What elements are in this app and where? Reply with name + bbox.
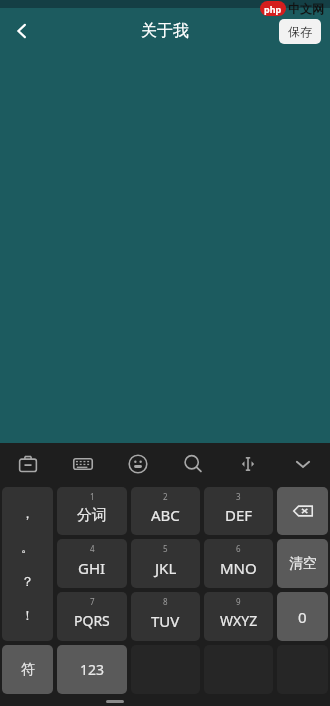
button[interactable]: 123 [57, 645, 127, 694]
staticText: 123 [80, 660, 105, 679]
button[interactable]: 3 [204, 487, 273, 535]
staticText: php [264, 3, 282, 15]
button[interactable]: 7 [57, 592, 127, 641]
staticText: 4 [90, 543, 95, 554]
staticText: ， [21, 505, 34, 521]
button[interactable]: 0 [277, 592, 328, 641]
staticText: JKL [155, 558, 177, 578]
staticText: 9 [236, 596, 241, 607]
button[interactable]: Hide keyboard [275, 443, 330, 485]
button[interactable]: 2 [131, 487, 200, 535]
staticText: 符 [21, 661, 35, 679]
button[interactable]: 9 [204, 592, 273, 641]
staticText: 7 [90, 596, 95, 607]
staticText: TUV [151, 611, 180, 631]
button[interactable]: 8 [131, 592, 200, 641]
button[interactable]: 6 [204, 539, 273, 588]
staticText: 1 [90, 491, 95, 502]
staticText: 清空 [289, 555, 317, 573]
staticText: 6 [236, 543, 241, 554]
button[interactable]: Emoji [110, 443, 165, 485]
staticText: 0 [298, 607, 307, 627]
staticText: 关于我 [141, 21, 189, 41]
button[interactable]: 5 [131, 539, 200, 588]
staticText: GHI [78, 558, 106, 578]
staticText: MNO [220, 558, 257, 578]
button[interactable]: 保存 [279, 19, 321, 44]
button[interactable]: Move cursor [220, 443, 275, 485]
staticText: 2 [163, 491, 168, 502]
staticText: ？ [21, 573, 34, 589]
button[interactable]: 1 [57, 487, 127, 535]
button[interactable]: Keyboard [55, 443, 110, 485]
staticText: 5 [163, 543, 168, 554]
staticText: DEF [225, 505, 253, 525]
button[interactable]: ， [2, 487, 53, 641]
staticText: 3 [236, 491, 241, 502]
staticText: 分词 [77, 506, 107, 525]
staticText: ！ [21, 607, 34, 623]
button[interactable]: Search [165, 443, 220, 485]
staticText: 保存 [288, 24, 312, 39]
staticText: 中文网 [288, 1, 324, 16]
staticText: 8 [163, 596, 168, 607]
staticText: WXYZ [220, 611, 258, 630]
staticText: 。 [21, 539, 34, 555]
button[interactable]: 4 [57, 539, 127, 588]
button[interactable]: 符 [2, 645, 53, 694]
staticText: ABC [151, 505, 180, 525]
button[interactable]: Back [0, 9, 44, 53]
button[interactable]: Backspace [277, 487, 328, 535]
staticText: PQRS [74, 611, 110, 630]
button[interactable]: 清空 [277, 539, 328, 588]
button[interactable]: Clipboard [0, 443, 55, 485]
